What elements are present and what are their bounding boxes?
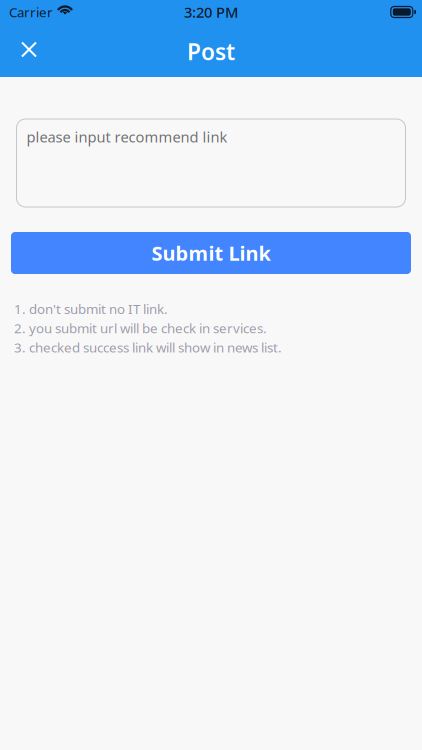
staticText: Submit Link [151,240,270,266]
staticText: Post [187,36,235,66]
staticText: 3. checked success link will show in new… [14,338,282,356]
staticText: 2. you submit url will be check in servi… [14,319,267,337]
staticText: Carrier [9,3,53,21]
staticText: 1. don't submit no IT link. [14,300,168,318]
button[interactable]: Close [0,32,50,70]
button[interactable]: please input recommend link [16,119,405,207]
staticText: please input recommend link [26,127,227,146]
button[interactable]: Submit Link [11,232,411,274]
staticText: 3:20 PM [184,2,238,22]
